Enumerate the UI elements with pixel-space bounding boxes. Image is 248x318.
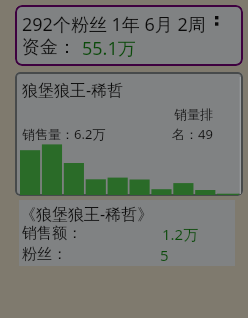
staticText: 资金： — [22, 36, 76, 59]
staticText: 5 — [160, 245, 169, 265]
staticText: 292个粉丝 1年 6月 2周 — [22, 12, 206, 37]
staticText: 《狼堡狼王-稀哲》 — [20, 203, 154, 225]
staticText: 销售量：6.2万 — [22, 125, 106, 143]
staticText: 55.1万 — [82, 36, 136, 61]
button[interactable]: 狼堡狼王-稀哲 销量图表 — [15, 72, 243, 196]
staticText: 粉丝： — [22, 245, 67, 264]
staticText: 销量排 — [174, 106, 213, 122]
staticText: 销售额： — [22, 224, 82, 243]
staticText: 狼堡狼王-稀哲 — [22, 79, 124, 101]
staticText: 名：49 — [172, 125, 213, 143]
button[interactable]: 粉丝与资金概览 — [15, 5, 243, 66]
staticText: 1.2万 — [162, 224, 199, 244]
button[interactable]: 《狼堡狼王-稀哲》 明细 — [19, 200, 235, 266]
